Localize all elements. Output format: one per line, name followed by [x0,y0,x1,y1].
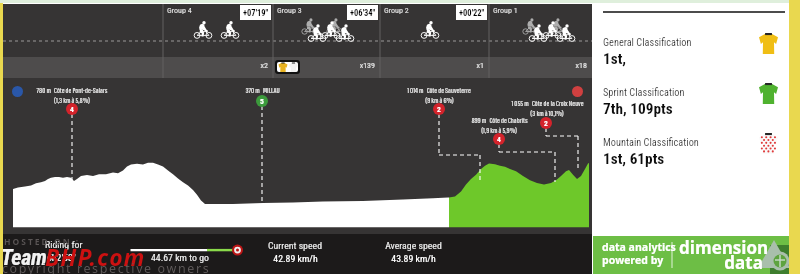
staticText: copyright respective owners [2,260,211,274]
button[interactable]: +06'34'' [347,5,378,20]
staticText: 7th, 109pts [603,100,673,118]
staticText: +07'19'' [243,8,269,18]
staticText: (3 km à 10,1%) [530,109,564,118]
button[interactable]: Mountain Classification [603,136,753,168]
staticText: +06'34'' [350,8,376,18]
staticText: Riding for [45,239,83,250]
staticText: x139 [335,61,375,70]
staticText: Current speed [268,240,322,251]
staticText: (1,3 km à 5,8%) [54,96,90,105]
staticText: dimension [679,236,769,259]
staticText: Group 4 [167,6,192,15]
staticText: 5h2'53'' [47,252,76,263]
button[interactable]: Jersey holders in group [277,62,298,72]
staticText: powered by [602,253,664,267]
staticText: Team- [1,245,54,271]
staticText: 1 055 m Côte de la Croix Neuve [511,99,584,108]
button[interactable]: Sprint Classification [603,86,753,118]
staticText: BHP.com [45,241,146,272]
staticText: 43.89 km/h [391,253,436,264]
button[interactable]: Group 1 [493,6,518,15]
staticText: Sprint Classification [603,86,685,98]
staticText: (1,9 km à 5,9%) [481,126,517,135]
staticText: 2 [544,119,548,128]
staticText: (9 km à 6%) [425,96,454,105]
button[interactable]: +07'19'' [240,5,271,20]
staticText: 1st, 61pts [603,150,665,168]
staticText: Average speed [385,240,442,251]
staticText: HOSTED ON : [4,236,81,248]
staticText: Group 1 [493,6,518,15]
staticText: 1st, [603,50,627,68]
staticText: x18 [547,61,587,70]
staticText: x2 [228,61,268,70]
staticText: 4 [70,105,74,114]
staticText: 44.67 km to go [151,252,209,263]
staticText: 899 m Côte de Chabrits [471,116,528,125]
staticText: Group 3 [277,6,302,15]
staticText: data analytics [602,240,676,254]
button[interactable]: Group 2 [384,6,409,15]
staticText: 2 [437,105,441,114]
button[interactable]: Group 4 [167,6,192,15]
staticText: 370 m MILLAU [245,86,280,95]
button[interactable]: Group 3 [277,6,302,15]
staticText: data [679,251,763,274]
staticText: 4 [497,135,501,144]
staticText: Mountain Classification [603,136,699,148]
staticText: +00'22'' [459,8,485,18]
button[interactable]: +00'22'' [456,5,487,20]
staticText: 780 m Côte de Pont-de-Salars [36,86,108,95]
staticText: Group 2 [384,6,409,15]
staticText: 5 [260,97,264,106]
button[interactable]: data analytics powered by dimension data [593,236,790,274]
staticText: 42.89 km/h [273,253,318,264]
button[interactable]: General Classification [603,36,753,68]
staticText: 1 014 m Côte de Sauveterre [407,86,471,95]
staticText: General Classification [603,36,692,48]
staticText: x1 [444,61,484,70]
